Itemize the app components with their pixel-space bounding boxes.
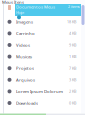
staticText: Videos (16, 42, 30, 48)
staticText: 18 KB (67, 19, 76, 24)
staticText: Downloads (16, 100, 38, 106)
staticText: Imagens (16, 19, 33, 25)
staticText: Lorem Ipsum Dolorum (16, 88, 63, 94)
staticText: 3 KB (69, 77, 76, 82)
staticText: 2 items (68, 4, 80, 9)
button[interactable]: Documentos Meus (4, 4, 81, 16)
staticText: 4 KB (69, 31, 76, 36)
staticText: 7 KB (69, 66, 76, 71)
button[interactable]: Arquivos (4, 74, 81, 86)
staticText: 9 KB (69, 42, 76, 48)
button[interactable]: Downloads (4, 97, 81, 109)
button[interactable]: Musicas (4, 51, 81, 62)
button[interactable]: Projetos (4, 62, 81, 74)
staticText: Hoje (16, 10, 24, 15)
staticText: Meus Itens (2, 0, 24, 5)
staticText: Documentos Meus (16, 4, 55, 10)
staticText: Arquivos (16, 77, 35, 83)
button[interactable]: Lorem Ipsum Dolorum (4, 86, 81, 97)
button[interactable]: Carrinho (4, 28, 81, 39)
staticText: Musicas (16, 54, 32, 59)
staticText: Carrinho (16, 30, 35, 36)
button[interactable]: Imagens (4, 16, 81, 28)
button[interactable]: Videos (4, 39, 81, 51)
staticText: Projetos (16, 65, 34, 71)
staticText: 1 KB (69, 54, 76, 59)
staticText: 0 KB (69, 100, 76, 106)
staticText: 2 KB (69, 89, 76, 94)
